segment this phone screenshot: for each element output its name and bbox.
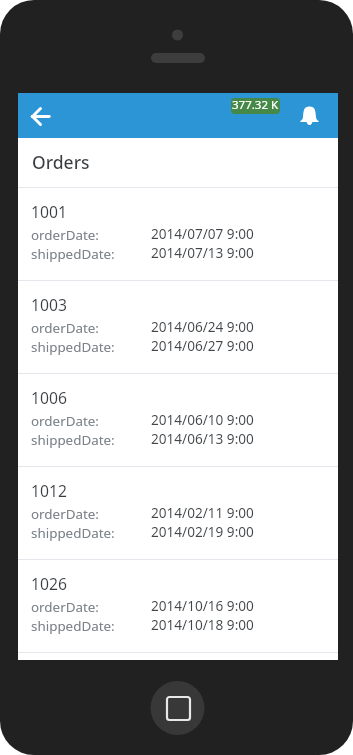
staticText: 377.32 K	[232, 98, 279, 113]
staticText: orderDate:	[31, 319, 99, 337]
button[interactable]: Notifications	[296, 102, 322, 128]
staticText: orderDate:	[31, 505, 99, 523]
button[interactable]: 1003	[18, 280, 338, 373]
staticText: shippedDate:	[31, 338, 115, 356]
button[interactable]: Back	[27, 103, 53, 129]
staticText: 1012	[31, 480, 67, 501]
staticText: 2014/07/13 9:00	[151, 243, 254, 262]
staticText: 2014/06/24 9:00	[151, 317, 254, 336]
staticText: 2014/06/13 9:00	[151, 429, 254, 448]
staticText: shippedDate:	[31, 617, 115, 635]
staticText: 1001	[31, 201, 67, 222]
staticText: 1003	[31, 294, 67, 315]
button[interactable]: 377.32 K	[231, 98, 280, 114]
staticText: orderDate:	[31, 412, 99, 430]
staticText: 2014/06/27 9:00	[151, 336, 254, 355]
staticText: 2014/06/10 9:00	[151, 410, 254, 429]
staticText: orderDate:	[31, 598, 99, 616]
button[interactable]: 1012	[18, 466, 338, 559]
staticText: 1006	[31, 387, 67, 408]
staticText: 2014/10/18 9:00	[151, 615, 254, 634]
staticText: 2014/02/19 9:00	[151, 522, 254, 541]
button[interactable]: 1026	[18, 559, 338, 652]
staticText: shippedDate:	[31, 524, 115, 542]
staticText: Orders	[32, 150, 90, 174]
staticText: 1026	[31, 573, 67, 594]
button[interactable]: 1006	[18, 373, 338, 466]
staticText: 2014/02/11 9:00	[151, 503, 254, 522]
staticText: shippedDate:	[31, 431, 115, 449]
staticText: orderDate:	[31, 226, 99, 244]
staticText: shippedDate:	[31, 245, 115, 263]
staticText: 2014/07/07 9:00	[151, 224, 254, 243]
button[interactable]: 1001	[18, 187, 338, 280]
staticText: 2014/10/16 9:00	[151, 596, 254, 615]
